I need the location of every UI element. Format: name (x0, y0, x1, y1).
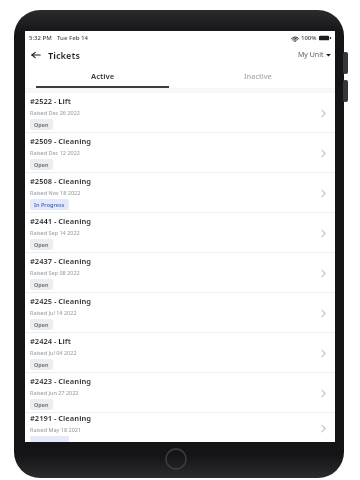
staticText: Open (34, 241, 49, 248)
staticText: Tickets (48, 49, 80, 61)
button[interactable]: #2424 - Lift (25, 333, 335, 372)
button[interactable]: #2441 - Cleaning (25, 213, 335, 252)
button[interactable]: #2423 - Cleaning (25, 373, 335, 412)
button[interactable]: Back (28, 47, 44, 63)
staticText: Raised Jul 04 2022 (30, 349, 77, 356)
staticText: Open (34, 161, 49, 168)
staticText: Raised Nov 18 2022 (30, 189, 81, 196)
button[interactable]: #2191 - Cleaning (25, 413, 335, 442)
staticText: #2424 - Lift (30, 336, 71, 346)
button[interactable]: Home (165, 448, 187, 470)
staticText: Raised May 18 2021 (30, 426, 82, 433)
button[interactable]: #2425 - Cleaning (25, 293, 335, 332)
button[interactable]: Active (25, 66, 180, 86)
staticText: My Unit (298, 50, 324, 60)
staticText: Raised Sep 08 2022 (30, 269, 80, 276)
staticText: Open (34, 401, 49, 408)
button[interactable]: #2509 - Cleaning (25, 133, 335, 172)
button[interactable]: #2522 - Lift (25, 93, 335, 132)
staticText: Raised Jul 14 2022 (30, 309, 77, 316)
button[interactable]: My Unit (298, 50, 331, 60)
staticText: #2437 - Cleaning (30, 256, 92, 266)
staticText: In Progress (34, 201, 65, 208)
staticText: #2441 - Cleaning (30, 216, 92, 226)
staticText: Open (34, 281, 49, 288)
staticText: Open (34, 121, 49, 128)
staticText: Inactive (244, 71, 272, 81)
staticText: Raised Sep 14 2022 (30, 229, 80, 236)
staticText: 100% (301, 34, 317, 42)
staticText: Raised Jun 27 2022 (30, 389, 79, 396)
staticText: 5:32 PM (29, 34, 52, 42)
staticText: #2508 - Cleaning (30, 176, 92, 186)
staticText: Open (34, 361, 49, 368)
staticText: Raised Dec 12 2022 (30, 149, 80, 156)
staticText: Raised Dec 26 2022 (30, 109, 80, 116)
staticText: #2522 - Lift (30, 96, 71, 106)
staticText: #2509 - Cleaning (30, 136, 92, 146)
button[interactable]: #2508 - Cleaning (25, 173, 335, 212)
staticText: #2423 - Cleaning (30, 376, 92, 386)
button[interactable]: #2437 - Cleaning (25, 253, 335, 292)
staticText: Open (34, 321, 49, 328)
staticText: #2425 - Cleaning (30, 296, 92, 306)
staticText: #2191 - Cleaning (30, 413, 92, 423)
staticText: Active (91, 71, 115, 81)
button[interactable]: Inactive (180, 66, 335, 86)
staticText: Tue Feb 14 (57, 34, 88, 42)
